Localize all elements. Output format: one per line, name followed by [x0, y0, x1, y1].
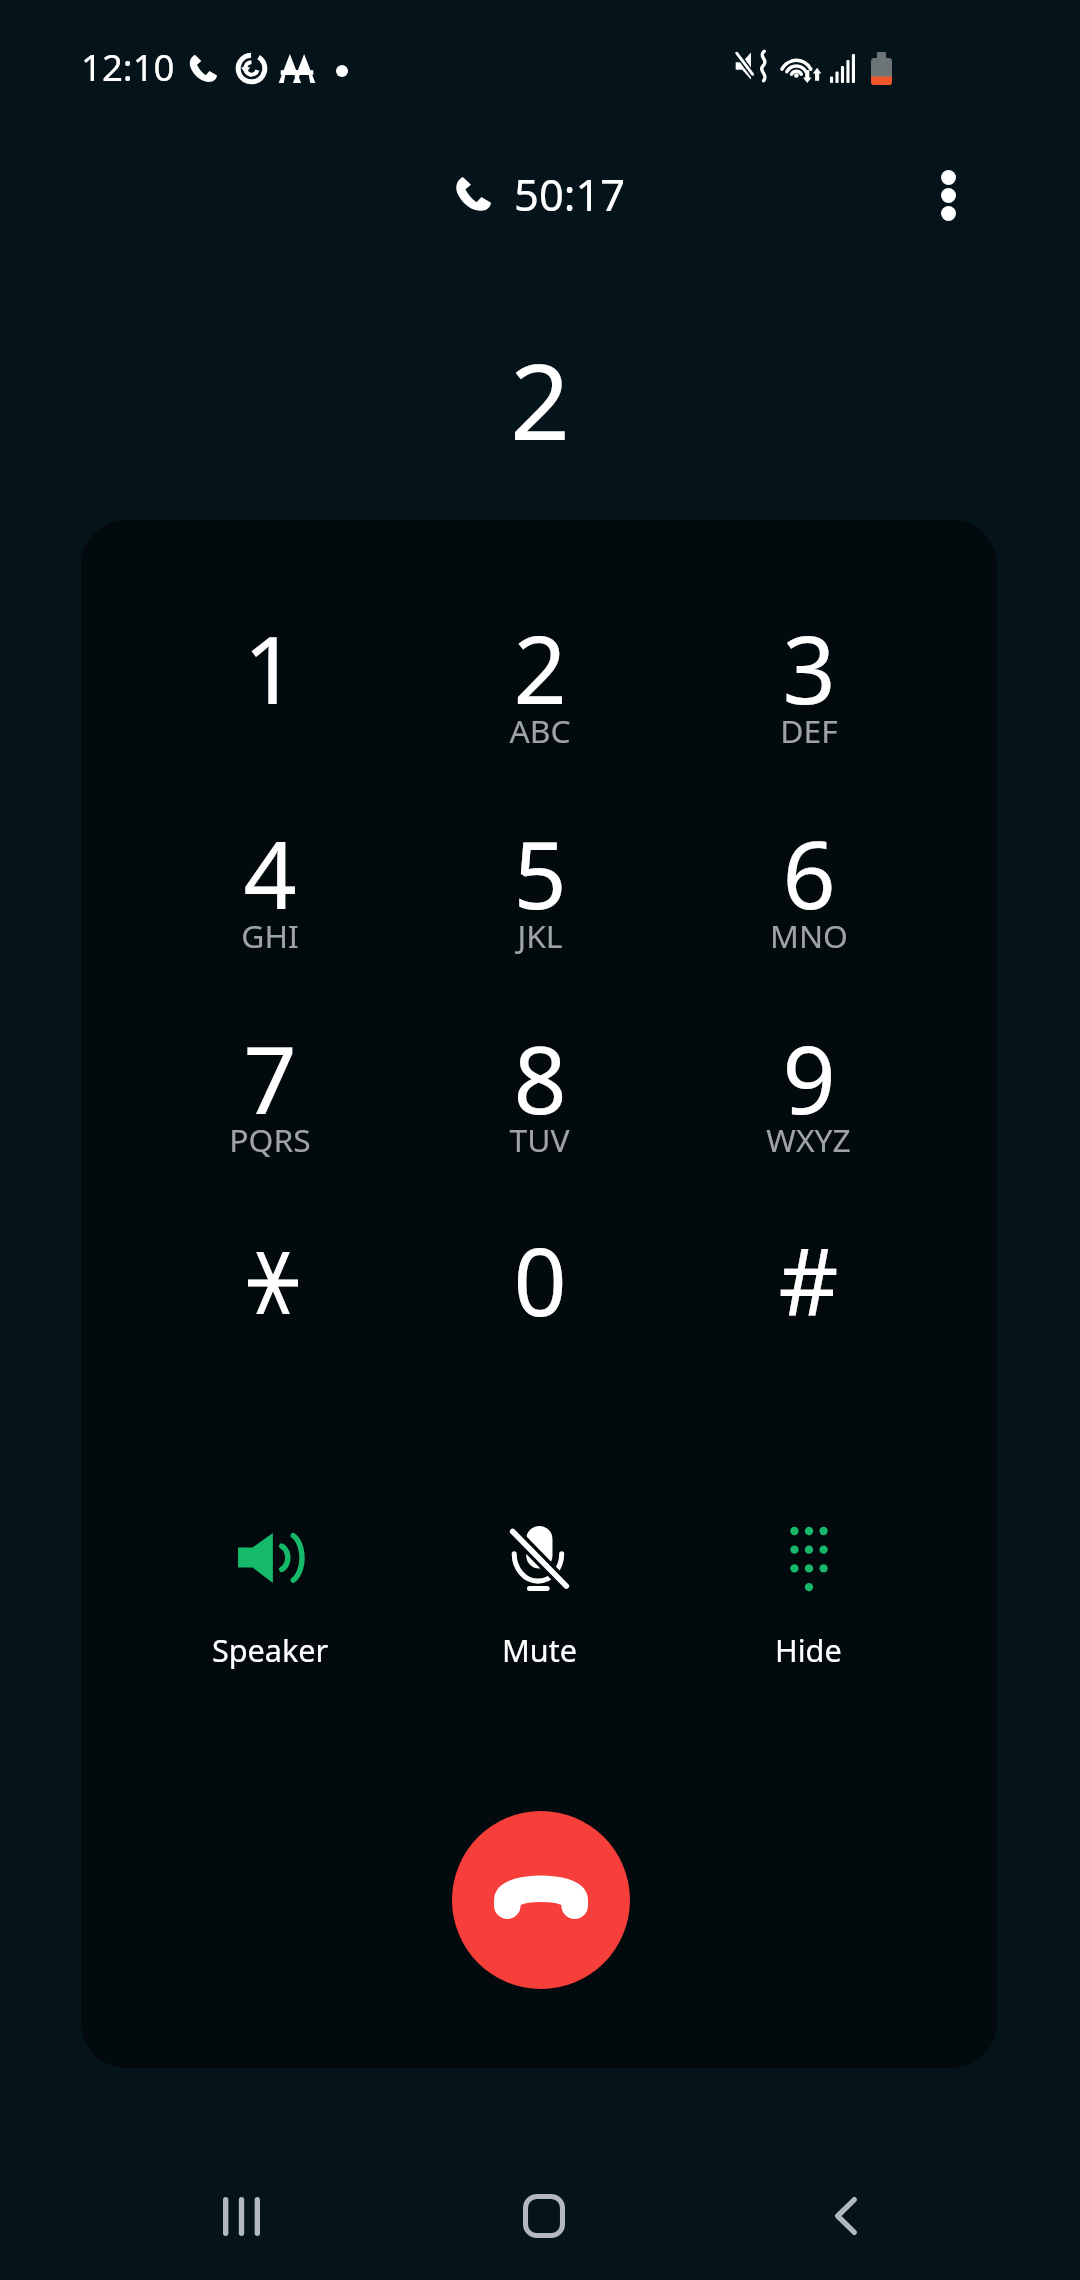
staticText: 12:10 — [81, 42, 175, 92]
button[interactable]: 1 — [135, 584, 405, 770]
button[interactable]: 0 — [405, 1196, 674, 1382]
staticText: Hide — [775, 1629, 842, 1671]
button[interactable]: 4GHI — [135, 789, 405, 975]
button[interactable]: 5JKL — [405, 789, 674, 975]
button[interactable]: # — [674, 1196, 943, 1382]
staticText: 8 — [513, 1015, 567, 1142]
staticText: GHI — [241, 914, 299, 957]
staticText: # — [778, 1217, 839, 1344]
button[interactable]: Recents — [169, 2144, 313, 2280]
staticText: Speaker — [212, 1629, 329, 1671]
button[interactable]: Speaker — [135, 1522, 405, 1696]
staticText: MNO — [770, 914, 848, 957]
staticText: 2 — [513, 605, 567, 732]
staticText: JKL — [517, 914, 563, 957]
button[interactable]: Hide — [674, 1522, 943, 1696]
staticText: 3 — [782, 605, 836, 732]
button[interactable]: 6MNO — [674, 789, 943, 975]
staticText: 50:17 — [514, 164, 626, 223]
button[interactable]: More options — [876, 123, 1020, 267]
staticText: 4 — [243, 810, 297, 937]
button[interactable]: End call — [452, 1811, 630, 1989]
button[interactable]: Mute — [405, 1522, 674, 1696]
button[interactable]: 2ABC — [405, 584, 674, 770]
staticText: 9 — [782, 1015, 836, 1142]
staticText: 6 — [782, 810, 836, 937]
button[interactable]: 8TUV — [405, 994, 674, 1180]
staticText: PQRS — [229, 1118, 311, 1161]
staticText: 5 — [513, 810, 567, 937]
staticText: Mute — [502, 1629, 577, 1671]
button[interactable]: * — [135, 1196, 405, 1382]
staticText: TUV — [509, 1118, 570, 1161]
staticText: 1 — [243, 605, 297, 732]
staticText: 2 — [510, 328, 571, 471]
button[interactable]: 3DEF — [674, 584, 943, 770]
staticText: 7 — [243, 1015, 297, 1142]
button[interactable]: Back — [774, 2144, 918, 2280]
button[interactable]: Home — [472, 2144, 616, 2280]
staticText: 0 — [513, 1217, 567, 1344]
staticText: WXYZ — [766, 1118, 851, 1161]
button[interactable]: 7PQRS — [135, 994, 405, 1180]
staticText: ABC — [509, 709, 571, 752]
staticText: DEF — [780, 709, 838, 752]
button[interactable]: 9WXYZ — [674, 994, 943, 1180]
